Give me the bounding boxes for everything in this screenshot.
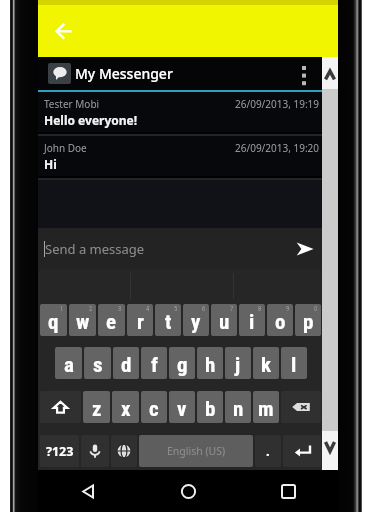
button[interactable]: z xyxy=(83,391,110,423)
button[interactable]: g xyxy=(169,347,195,379)
button[interactable]: s xyxy=(84,347,111,379)
button[interactable]: n xyxy=(225,391,251,423)
staticText: 6 xyxy=(202,305,206,313)
staticText: John Doe xyxy=(44,141,87,155)
button[interactable]: Recents xyxy=(238,470,338,512)
staticText: i xyxy=(249,310,255,335)
staticText: 2 xyxy=(89,305,93,313)
staticText: h xyxy=(205,353,216,378)
button[interactable]: h xyxy=(197,347,223,379)
staticText: Send a message xyxy=(45,240,145,258)
staticText: t xyxy=(165,310,172,335)
staticText: g xyxy=(177,353,188,378)
button[interactable]: Scroll down xyxy=(322,431,338,470)
button[interactable]: y xyxy=(183,304,209,336)
staticText: s xyxy=(93,353,103,378)
button[interactable]: Backspace xyxy=(281,391,321,423)
button[interactable]: Back xyxy=(38,470,138,512)
staticText: 9 xyxy=(286,305,290,313)
staticText: . xyxy=(266,442,270,460)
staticText: 26/09/2013, 19:20 xyxy=(235,141,320,155)
button[interactable]: ?123 xyxy=(40,435,79,467)
staticText: ?123 xyxy=(46,443,74,460)
staticText: 7 xyxy=(230,305,234,313)
staticText: e xyxy=(106,310,117,335)
button[interactable]: e xyxy=(98,304,125,336)
button[interactable]: i xyxy=(239,304,265,336)
button[interactable]: Shift xyxy=(40,391,81,423)
staticText: 8 xyxy=(258,305,262,313)
button[interactable]: w xyxy=(69,304,96,336)
staticText: 4 xyxy=(146,305,150,313)
staticText: j xyxy=(235,353,241,378)
button[interactable]: b xyxy=(197,391,223,423)
staticText: d xyxy=(121,353,132,378)
button[interactable]: Tester Mobi xyxy=(38,92,322,136)
staticText: a xyxy=(64,353,74,378)
button[interactable]: Back xyxy=(56,23,72,39)
staticText: w xyxy=(76,310,90,335)
staticText: o xyxy=(275,310,286,335)
button[interactable]: p xyxy=(295,304,321,336)
button[interactable]: f xyxy=(141,347,167,379)
staticText: Hello everyone! xyxy=(44,112,138,128)
button[interactable]: John Doe xyxy=(38,136,322,180)
staticText: b xyxy=(205,397,216,422)
button[interactable]: j xyxy=(225,347,251,379)
staticText: Hi xyxy=(44,156,57,172)
button[interactable]: English (US) xyxy=(139,435,253,467)
button[interactable]: Change language xyxy=(111,435,137,467)
button[interactable]: c xyxy=(141,391,167,423)
button[interactable]: q xyxy=(40,304,67,336)
staticText: 5 xyxy=(174,305,178,313)
staticText: 0 xyxy=(314,305,318,313)
button[interactable]: Voice input xyxy=(81,435,109,467)
staticText: q xyxy=(48,310,59,335)
staticText: f xyxy=(151,353,158,378)
staticText: n xyxy=(233,397,244,422)
button[interactable]: v xyxy=(169,391,195,423)
staticText: y xyxy=(191,310,201,335)
button[interactable]: x xyxy=(112,391,139,423)
staticText: Tester Mobi xyxy=(44,97,100,111)
button[interactable]: m xyxy=(253,391,279,423)
button[interactable]: More options xyxy=(291,57,317,90)
button[interactable]: Send xyxy=(291,235,319,263)
button[interactable]: u xyxy=(211,304,237,336)
staticText: m xyxy=(258,397,274,422)
staticText: c xyxy=(149,397,159,422)
staticText: k xyxy=(261,353,272,378)
staticText: l xyxy=(291,353,297,378)
staticText: 1 xyxy=(60,305,64,313)
button[interactable]: a xyxy=(55,347,82,379)
staticText: My Messenger xyxy=(75,64,173,83)
staticText: p xyxy=(303,310,314,335)
button[interactable]: Scroll up xyxy=(322,57,338,89)
button[interactable]: Enter xyxy=(283,435,321,467)
button[interactable]: . xyxy=(255,435,281,467)
button[interactable]: k xyxy=(253,347,279,379)
staticText: v xyxy=(177,397,187,422)
button[interactable]: r xyxy=(127,304,153,336)
staticText: u xyxy=(219,310,230,335)
staticText: 26/09/2013, 19:19 xyxy=(235,97,320,111)
button[interactable]: Home xyxy=(138,470,238,512)
staticText: 3 xyxy=(118,305,122,313)
button[interactable]: d xyxy=(113,347,139,379)
button[interactable]: t xyxy=(155,304,181,336)
button[interactable]: l xyxy=(281,347,307,379)
staticText: r xyxy=(137,310,144,335)
staticText: English (US) xyxy=(167,444,226,458)
button[interactable]: o xyxy=(267,304,293,336)
staticText: x xyxy=(121,397,131,422)
staticText: z xyxy=(92,397,102,422)
